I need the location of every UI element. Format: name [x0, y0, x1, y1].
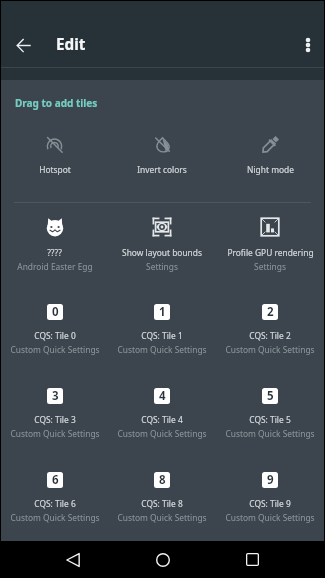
- staticText: CQS: Tile 3: [34, 414, 76, 425]
- staticText: 5: [267, 388, 274, 404]
- staticText: Hotspot: [39, 164, 71, 175]
- staticText: 4: [159, 388, 166, 404]
- staticText: Profile GPU rendering: [227, 247, 314, 258]
- button[interactable]: Show layout bounds: [108, 203, 216, 290]
- button[interactable]: 0: [1, 290, 108, 374]
- staticText: Custom Quick Settings: [10, 344, 100, 355]
- button[interactable]: Back: [54, 541, 91, 578]
- staticText: CQS: Tile 4: [141, 414, 183, 425]
- staticText: Show layout bounds: [122, 247, 202, 258]
- staticText: Settings: [146, 261, 178, 272]
- button[interactable]: ????: [1, 203, 108, 290]
- staticText: CQS: Tile 6: [34, 498, 76, 509]
- button[interactable]: 4: [108, 374, 216, 458]
- staticText: Custom Quick Settings: [225, 512, 315, 523]
- staticText: 2: [267, 304, 274, 320]
- staticText: Invert colors: [137, 164, 187, 175]
- button[interactable]: Recent apps: [234, 541, 271, 578]
- staticText: Settings: [254, 261, 286, 272]
- staticText: CQS: Tile 0: [34, 330, 76, 341]
- button[interactable]: 1: [108, 290, 216, 374]
- button[interactable]: 6: [1, 458, 108, 541]
- staticText: 1: [159, 304, 166, 320]
- staticText: Custom Quick Settings: [10, 428, 100, 439]
- staticText: CQS: Tile 1: [141, 330, 183, 341]
- staticText: ????: [47, 247, 62, 258]
- button[interactable]: 9: [216, 458, 324, 541]
- button[interactable]: 5: [216, 374, 324, 458]
- button[interactable]: 3: [1, 374, 108, 458]
- staticText: CQS: Tile 5: [249, 414, 291, 425]
- button[interactable]: 8: [108, 458, 216, 541]
- button[interactable]: Home: [144, 541, 181, 578]
- staticText: 3: [52, 388, 59, 404]
- staticText: 6: [52, 472, 59, 488]
- button[interactable]: More options: [292, 29, 324, 61]
- staticText: Android Easter Egg: [17, 261, 93, 272]
- button[interactable]: Profile GPU rendering: [216, 203, 324, 290]
- staticText: Custom Quick Settings: [117, 344, 207, 355]
- staticText: CQS: Tile 2: [249, 330, 291, 341]
- staticText: 9: [267, 472, 274, 488]
- button[interactable]: Invert colors: [108, 115, 216, 202]
- staticText: CQS: Tile 8: [141, 498, 183, 509]
- staticText: Custom Quick Settings: [117, 428, 207, 439]
- button[interactable]: Night mode: [216, 115, 324, 202]
- staticText: Custom Quick Settings: [225, 428, 315, 439]
- staticText: Custom Quick Settings: [117, 512, 207, 523]
- staticText: 8: [159, 472, 166, 488]
- button[interactable]: Navigate up: [5, 27, 41, 63]
- staticText: Custom Quick Settings: [10, 512, 100, 523]
- staticText: Night mode: [247, 164, 294, 175]
- staticText: Edit: [56, 34, 86, 55]
- button[interactable]: Hotspot: [1, 115, 108, 202]
- button[interactable]: 2: [216, 290, 324, 374]
- staticText: Drag to add tiles: [15, 96, 98, 110]
- staticText: 0: [52, 304, 59, 320]
- staticText: CQS: Tile 9: [249, 498, 291, 509]
- staticText: Custom Quick Settings: [225, 344, 315, 355]
